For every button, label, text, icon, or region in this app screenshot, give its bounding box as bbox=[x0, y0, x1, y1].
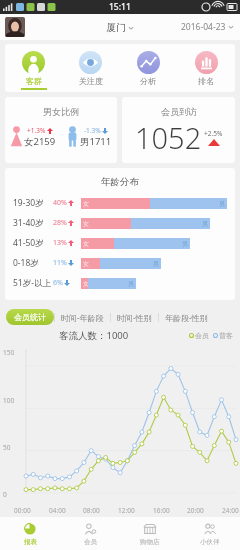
button[interactable]: 报表 bbox=[0, 517, 60, 550]
staticText: 男 bbox=[182, 240, 188, 248]
staticText: 0-18岁 bbox=[13, 257, 39, 269]
staticText: 会员 bbox=[195, 331, 209, 340]
staticText: 51岁-以上 bbox=[13, 277, 51, 289]
staticText: 11% bbox=[53, 258, 67, 268]
staticText: 15:11 bbox=[109, 1, 131, 13]
button[interactable]: 19-30岁 bbox=[5, 193, 235, 213]
button[interactable]: 会员到访 bbox=[122, 97, 235, 163]
staticText: 年龄段-性别 bbox=[165, 312, 208, 323]
button[interactable]: 时间-性别 bbox=[111, 309, 158, 326]
button[interactable]: 2016-04-23 bbox=[181, 21, 234, 33]
staticText: 女2159 bbox=[24, 135, 56, 148]
button[interactable]: 分析 bbox=[119, 44, 177, 92]
staticText: 男 bbox=[202, 220, 208, 228]
staticText: 41-50岁 bbox=[13, 237, 44, 249]
staticText: 会员到访 bbox=[161, 106, 197, 117]
staticText: 女 bbox=[83, 260, 89, 268]
button[interactable]: 小伙伴 bbox=[180, 517, 240, 550]
staticText: 04:00 bbox=[49, 506, 66, 515]
button[interactable]: 男女比例 bbox=[5, 97, 117, 163]
staticText: 100 bbox=[3, 396, 15, 405]
staticText: +1.3% bbox=[27, 126, 46, 135]
button[interactable]: 时间-年龄段 bbox=[55, 309, 110, 326]
staticText: 时间-性别 bbox=[117, 312, 152, 323]
staticText: +2.5% bbox=[204, 129, 223, 138]
staticText: 150 bbox=[3, 348, 15, 357]
staticText: 12:00 bbox=[118, 506, 135, 515]
staticText: 女 bbox=[83, 280, 88, 288]
staticText: 6% bbox=[53, 278, 63, 288]
button[interactable]: 41-50岁 bbox=[5, 233, 235, 253]
button[interactable]: 51岁-以上 bbox=[5, 273, 235, 293]
staticText: 会员统计 bbox=[14, 312, 46, 322]
button[interactable]: 31-40岁 bbox=[5, 213, 235, 233]
staticText: -1.3% bbox=[84, 126, 101, 135]
button[interactable]: 会员 bbox=[189, 331, 233, 340]
staticText: 男女比例 bbox=[43, 106, 79, 117]
staticText: 厦门 bbox=[106, 21, 126, 34]
staticText: 08:00 bbox=[83, 506, 100, 515]
staticText: 小伙伴 bbox=[200, 538, 220, 546]
button[interactable]: 客群 bbox=[5, 44, 62, 92]
staticText: 女 bbox=[83, 200, 89, 208]
staticText: 31-40岁 bbox=[13, 217, 44, 229]
button[interactable]: 关注度 bbox=[62, 44, 119, 92]
button[interactable]: 排名 bbox=[177, 44, 235, 92]
staticText: 会员 bbox=[84, 538, 97, 546]
staticText: 报表 bbox=[24, 538, 37, 546]
button[interactable]: Profile bbox=[5, 17, 25, 37]
button[interactable]: 0-18岁 bbox=[5, 253, 235, 273]
staticText: 28% bbox=[53, 218, 67, 228]
staticText: 24:00 bbox=[222, 506, 239, 515]
staticText: 1052 bbox=[135, 118, 202, 157]
button[interactable]: 厦门 bbox=[106, 21, 134, 34]
button[interactable]: 购物店 bbox=[120, 517, 180, 550]
staticText: 13% bbox=[53, 238, 67, 248]
staticText: 客群 bbox=[26, 76, 42, 86]
staticText: 时间-年龄段 bbox=[61, 312, 104, 323]
button[interactable]: 年龄段-性别 bbox=[159, 309, 214, 326]
staticText: 50 bbox=[3, 443, 11, 452]
staticText: 0 bbox=[3, 490, 7, 499]
staticText: 普客 bbox=[219, 331, 233, 340]
button[interactable]: 会员 bbox=[60, 517, 120, 550]
staticText: 00:00 bbox=[14, 506, 31, 515]
staticText: 客流人数：1000 bbox=[59, 329, 129, 342]
staticText: 男 bbox=[219, 200, 225, 208]
staticText: 女 bbox=[83, 220, 89, 228]
staticText: 16:00 bbox=[153, 506, 170, 515]
staticText: 20:00 bbox=[187, 506, 204, 515]
staticText: 男1711 bbox=[80, 135, 112, 148]
staticText: 40% bbox=[53, 198, 67, 208]
button[interactable]: 会员统计 bbox=[6, 309, 54, 325]
staticText: 19-30岁 bbox=[13, 197, 44, 209]
staticText: 购物店 bbox=[140, 538, 160, 546]
staticText: 女 bbox=[83, 240, 89, 248]
staticText: 男 bbox=[153, 260, 159, 268]
staticText: 男 bbox=[128, 280, 134, 288]
staticText: 关注度 bbox=[79, 76, 103, 86]
staticText: 年龄分布 bbox=[5, 176, 235, 188]
staticText: 分析 bbox=[140, 76, 156, 86]
staticText: 2016-04-23 bbox=[181, 21, 226, 33]
staticText: 排名 bbox=[198, 76, 214, 86]
